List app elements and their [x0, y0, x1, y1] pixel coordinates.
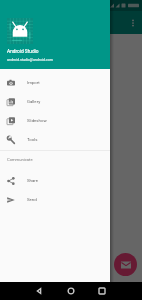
- button[interactable]: Recents: [96, 285, 108, 297]
- button[interactable]: Back: [33, 285, 45, 297]
- button[interactable]: Send: [0, 190, 110, 209]
- button[interactable]: Share: [0, 171, 110, 190]
- button[interactable]: Home: [65, 285, 77, 297]
- staticText: Android Studio: [7, 49, 39, 55]
- staticText: Gallery: [27, 99, 41, 104]
- button[interactable]: More options: [125, 15, 140, 30]
- staticText: Send: [27, 197, 37, 202]
- staticText: Import: [27, 80, 40, 85]
- staticText: Communicate: [7, 157, 33, 162]
- button[interactable]: Slideshow: [0, 111, 110, 130]
- staticText: Share: [27, 178, 38, 183]
- staticText: Tools: [27, 137, 38, 142]
- button[interactable]: Compose email: [114, 253, 137, 276]
- staticText: Slideshow: [27, 118, 47, 123]
- button[interactable]: Gallery: [0, 92, 110, 111]
- staticText: android.studio@android.com: [7, 58, 53, 62]
- button[interactable]: Tools: [0, 130, 110, 149]
- button[interactable]: Import: [0, 73, 110, 92]
